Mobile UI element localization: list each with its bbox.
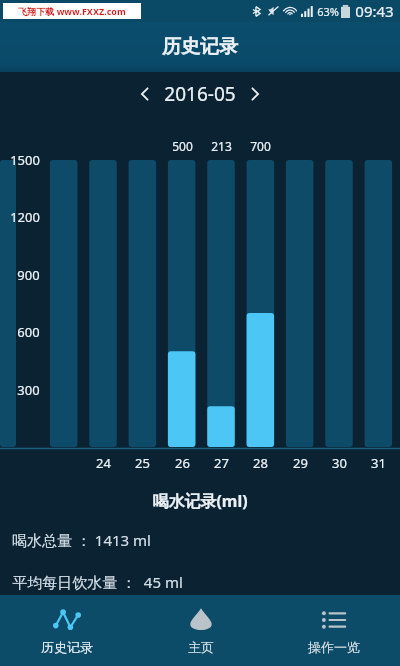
staticText: 213 (211, 138, 232, 154)
button[interactable]: History (0, 595, 134, 666)
staticText: 飞翔下载 www.FXXZ.com (18, 5, 126, 17)
staticText: 操作一览 (308, 639, 360, 655)
staticText: 喝水记录(ml) (152, 490, 248, 512)
button[interactable]: Previous month (132, 81, 158, 107)
staticText: 28 (253, 454, 268, 472)
staticText: 平均每日饮水量 ： 45 ml (12, 572, 183, 592)
staticText: 2016-05 (164, 81, 236, 107)
staticText: 900 (17, 266, 40, 284)
button[interactable]: Operations (267, 595, 400, 666)
staticText: 1500 (10, 151, 40, 169)
staticText: 27 (214, 454, 229, 472)
staticText: 24 (96, 454, 111, 472)
staticText: 700 (250, 138, 271, 154)
staticText: 29 (293, 454, 308, 472)
staticText: 25 (135, 454, 150, 472)
staticText: 26 (175, 454, 190, 472)
staticText: 历史记录 (162, 35, 238, 59)
staticText: 31 (371, 454, 386, 472)
staticText: 主页 (188, 639, 214, 655)
button[interactable]: Home (134, 595, 267, 666)
button[interactable]: Next month (242, 81, 268, 107)
staticText: 63% (317, 4, 339, 19)
staticText: 600 (17, 323, 40, 341)
staticText: 500 (172, 138, 193, 154)
staticText: 历史记录 (41, 639, 93, 655)
staticText: 喝水总量 ： 1413 ml (12, 530, 151, 550)
staticText: 30 (332, 454, 347, 472)
staticText: 09:43 (355, 1, 394, 21)
staticText: 300 (17, 381, 40, 399)
staticText: 1200 (10, 208, 40, 226)
